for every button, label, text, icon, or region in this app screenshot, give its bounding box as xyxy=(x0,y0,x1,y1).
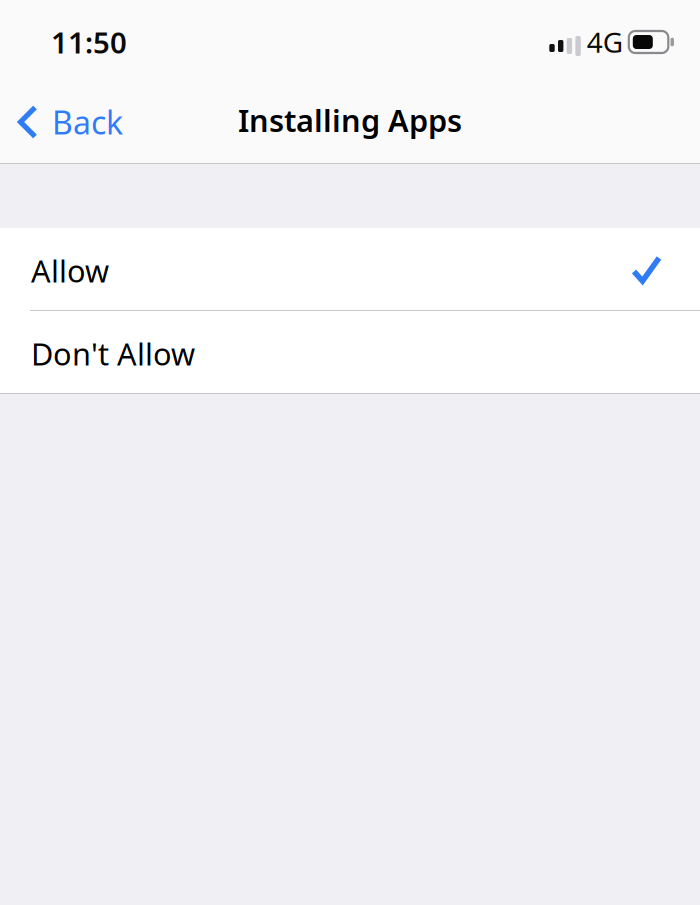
staticText: 4G xyxy=(587,23,623,61)
button[interactable]: Back xyxy=(0,75,137,163)
staticText: Allow xyxy=(31,250,109,291)
staticText: Don't Allow xyxy=(31,333,195,374)
button[interactable]: Allow xyxy=(0,228,700,310)
staticText: Back xyxy=(52,101,123,143)
button[interactable]: Don't Allow xyxy=(0,311,700,393)
staticText: Installing Apps xyxy=(238,100,462,140)
staticText: 11:50 xyxy=(51,22,127,61)
